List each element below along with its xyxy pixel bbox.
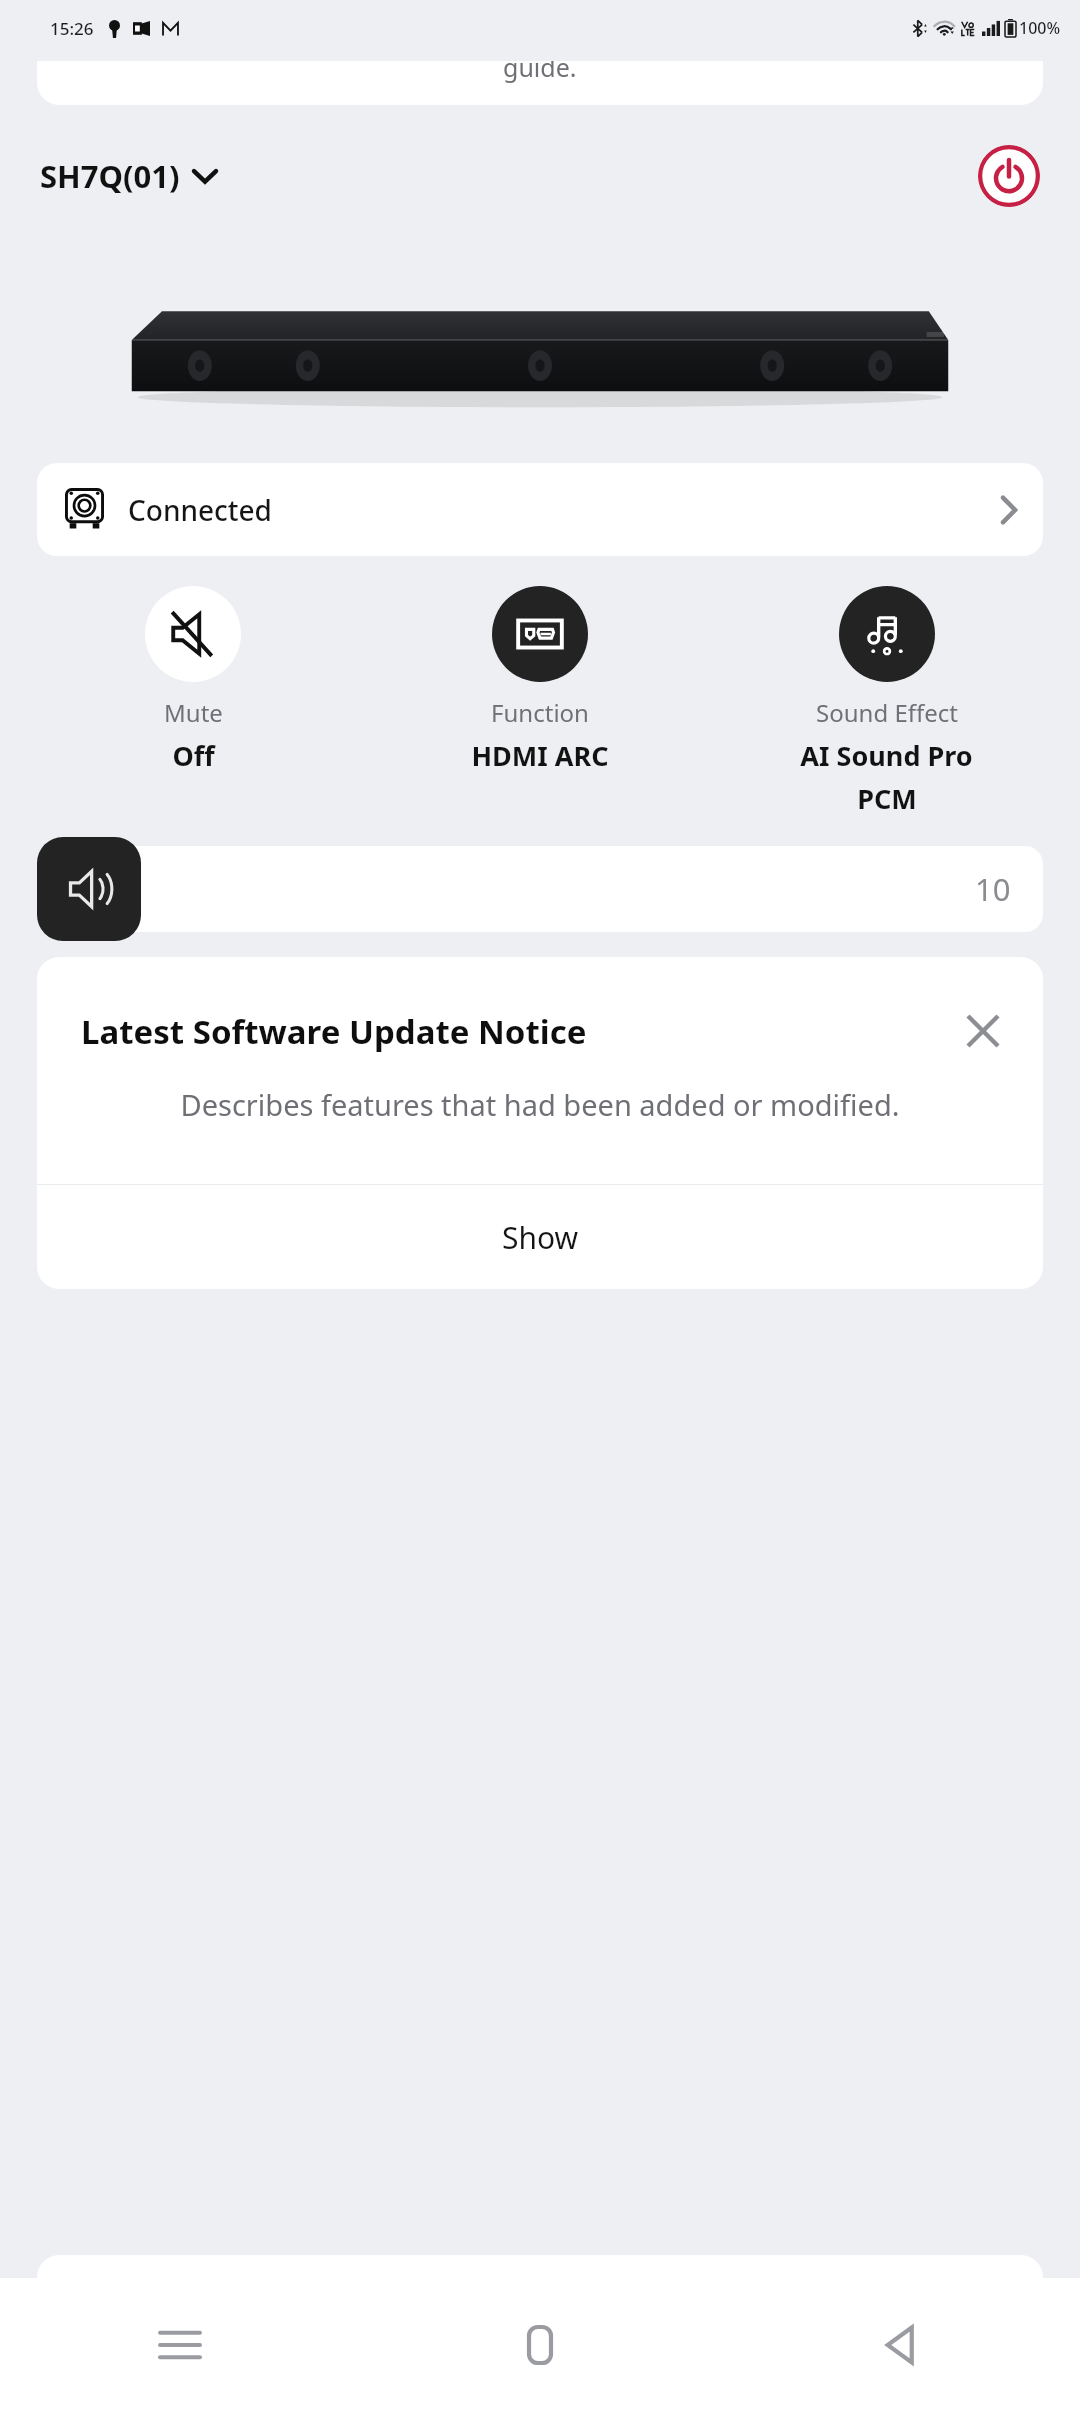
button[interactable]: Power: [978, 145, 1040, 207]
staticText: PCM: [857, 780, 917, 817]
staticText: Latest Software Update Notice: [81, 1009, 587, 1054]
staticText: Mute: [164, 696, 223, 729]
staticText: 10: [975, 868, 1011, 910]
staticText: guide.: [503, 61, 577, 84]
button[interactable]: Close: [955, 1003, 1011, 1059]
button[interactable]: Back: [720, 2278, 1080, 2412]
staticText: Function: [491, 696, 589, 729]
staticText: 100%: [1019, 17, 1061, 39]
staticText: Sound Effect: [816, 696, 958, 729]
staticText: AI Sound Pro: [800, 737, 973, 774]
button[interactable]: Show: [37, 1185, 1043, 1289]
button[interactable]: Mute: [20, 586, 366, 774]
button[interactable]: 10: [37, 846, 1043, 932]
staticText: Describes features that had been added o…: [91, 1085, 989, 1124]
button[interactable]: Home: [360, 2278, 720, 2412]
button[interactable]: Function: [366, 586, 713, 774]
button[interactable]: Volume: [37, 837, 141, 941]
button[interactable]: Recents: [0, 2278, 360, 2412]
staticText: Off: [172, 737, 215, 774]
button[interactable]: Sound Effect: [713, 586, 1060, 817]
staticText: SH7Q(01): [40, 155, 180, 197]
button[interactable]: Connected: [37, 463, 1043, 556]
staticText: HDMI ARC: [471, 737, 609, 774]
staticText: Connected: [128, 491, 272, 529]
staticText: Show: [502, 1217, 579, 1258]
button[interactable]: SH7Q(01): [40, 155, 224, 197]
staticText: 15:26: [50, 17, 94, 40]
